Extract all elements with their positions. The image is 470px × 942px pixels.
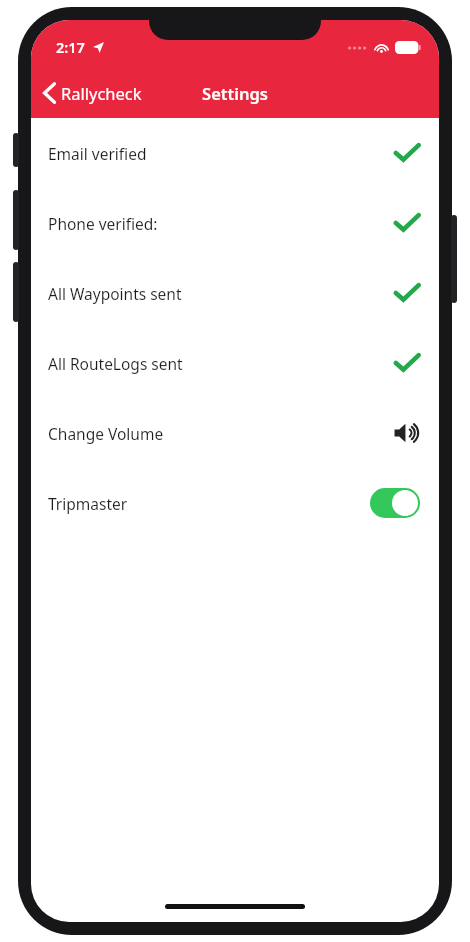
button[interactable]: Tripmaster toggle, on bbox=[370, 488, 420, 518]
button[interactable]: Change Volume bbox=[394, 422, 420, 444]
other: Verified bbox=[394, 142, 420, 164]
other: Sent bbox=[394, 282, 420, 304]
staticText: Settings bbox=[202, 82, 268, 104]
button[interactable]: Tripmaster bbox=[31, 468, 439, 538]
button[interactable]: Email verified bbox=[31, 118, 439, 188]
button[interactable]: Change Volume bbox=[31, 398, 439, 468]
staticText: All Waypoints sent bbox=[48, 283, 182, 304]
staticText: Phone verified: bbox=[48, 213, 158, 234]
button[interactable]: All RouteLogs sent bbox=[31, 328, 439, 398]
button[interactable]: All Waypoints sent bbox=[31, 258, 439, 328]
button[interactable]: Phone verified: bbox=[31, 188, 439, 258]
staticText: All RouteLogs sent bbox=[48, 353, 183, 374]
staticText: Rallycheck bbox=[61, 82, 142, 104]
staticText: 2:17 bbox=[56, 37, 85, 57]
staticText: Change Volume bbox=[48, 423, 164, 444]
other: Verified bbox=[394, 212, 420, 234]
button[interactable]: Rallycheck bbox=[39, 78, 146, 108]
staticText: Email verified bbox=[48, 143, 147, 164]
staticText: Tripmaster bbox=[48, 493, 128, 514]
other: Sent bbox=[394, 352, 420, 374]
